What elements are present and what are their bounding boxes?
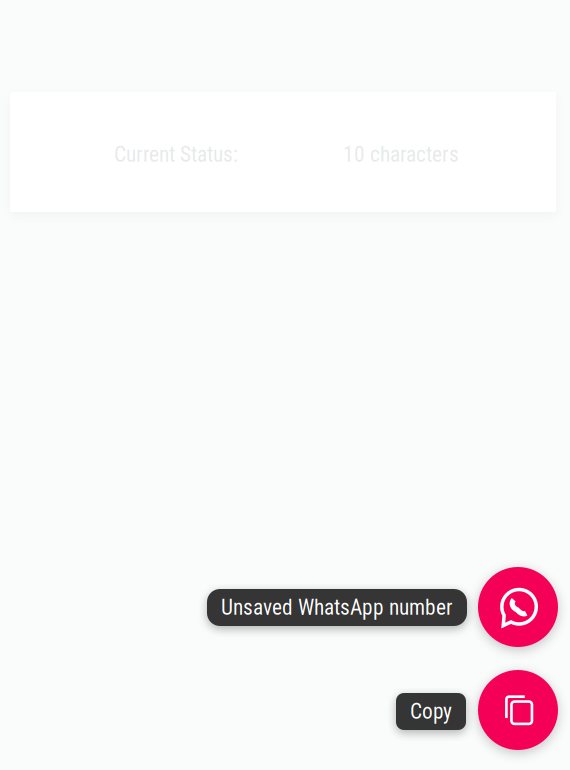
button[interactable]: Copy: [396, 693, 466, 730]
button[interactable]: Copy: [478, 670, 558, 750]
button[interactable]: Message unsaved WhatsApp number: [478, 567, 558, 647]
button[interactable]: Unsaved WhatsApp number: [207, 589, 467, 626]
staticText: Unsaved WhatsApp number: [221, 595, 453, 620]
staticText: 10 characters: [343, 142, 459, 167]
staticText: Copy: [410, 699, 452, 724]
staticText: Current Status:: [114, 142, 238, 167]
